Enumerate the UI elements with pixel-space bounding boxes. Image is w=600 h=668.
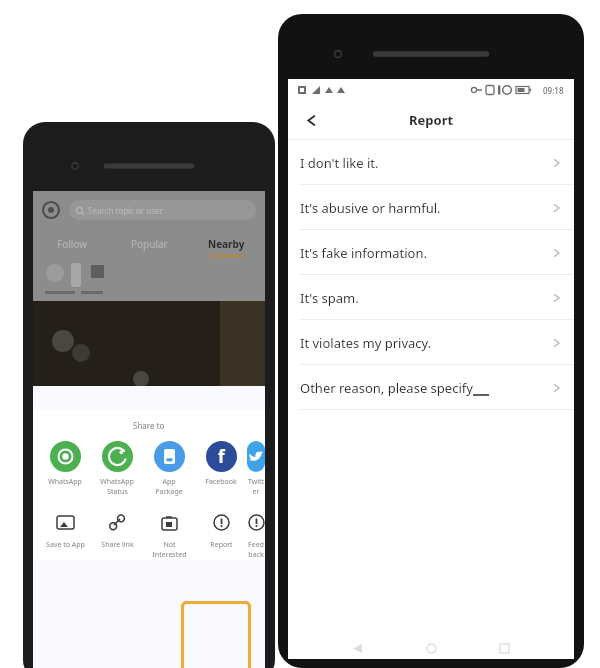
- button[interactable]: Follow: [33, 229, 111, 259]
- staticText: Twitter: [247, 477, 265, 497]
- button[interactable]: Feedback: [247, 511, 265, 560]
- button[interactable]: It's abusive or harmful.: [288, 185, 574, 230]
- staticText: WhatsApp: [48, 477, 82, 487]
- staticText: 09:18: [543, 85, 564, 96]
- button[interactable]: Nearby: [188, 229, 265, 259]
- button[interactable]: It's spam.: [288, 275, 574, 320]
- staticText: f: [218, 445, 225, 468]
- button[interactable]: Report: [195, 511, 247, 550]
- staticText: It's spam.: [300, 289, 359, 307]
- staticText: Popular: [131, 237, 168, 251]
- button[interactable]: WhatsApp: [91, 441, 143, 497]
- staticText: Save to App: [46, 540, 85, 550]
- button[interactable]: f: [195, 441, 247, 487]
- staticText: WhatsApp: [100, 477, 134, 487]
- staticText: Package: [155, 487, 183, 497]
- button[interactable]: Other reason, please specify: [288, 365, 574, 410]
- button[interactable]: Save to App: [39, 511, 91, 550]
- staticText: Facebook: [205, 477, 237, 487]
- staticText: App: [162, 477, 176, 487]
- staticText: Search topic or user: [88, 205, 163, 216]
- staticText: I don't like it.: [300, 154, 379, 172]
- staticText: Nearby: [208, 237, 245, 251]
- staticText: It's abusive or harmful.: [300, 199, 441, 217]
- staticText: It's fake information.: [300, 244, 427, 262]
- button[interactable]: Popular: [111, 229, 188, 259]
- staticText: Share to: [133, 420, 165, 431]
- staticText: It violates my privacy.: [300, 334, 432, 352]
- staticText: Follow: [57, 237, 88, 251]
- button[interactable]: Not: [143, 511, 195, 560]
- button[interactable]: Share link: [91, 511, 143, 550]
- staticText: Feedback: [247, 540, 265, 560]
- button[interactable]: Back: [294, 103, 328, 137]
- button[interactable]: WhatsApp: [39, 441, 91, 487]
- button[interactable]: Twitter: [247, 441, 265, 497]
- button[interactable]: I don't like it.: [288, 140, 574, 185]
- staticText: Report: [210, 540, 233, 550]
- staticText: Report: [409, 111, 454, 129]
- staticText: Not: [163, 540, 176, 550]
- staticText: Status: [107, 487, 128, 497]
- button[interactable]: It's fake information.: [288, 230, 574, 275]
- staticText: Interested: [152, 550, 187, 560]
- button[interactable]: Search topic or user: [69, 200, 256, 220]
- button[interactable]: App: [143, 441, 195, 497]
- staticText: Share link: [101, 540, 134, 550]
- button[interactable]: It violates my privacy.: [288, 320, 574, 365]
- staticText: Other reason, please specify: [300, 379, 473, 397]
